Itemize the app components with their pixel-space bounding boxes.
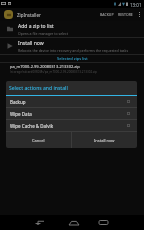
staticText: Cancel [32,138,45,143]
button[interactable]: Wipe Data [6,108,137,119]
staticText: Wipe Data [10,111,32,117]
button[interactable]: Back [26,215,52,230]
staticText: Install now [18,40,44,47]
button[interactable]: BACKUP [98,8,116,21]
button[interactable]: Cancel [6,132,71,148]
staticText: Add a zip to list [18,23,54,30]
staticText: BACKUP [100,12,114,17]
staticText: RESTORE [118,12,133,17]
staticText: ZipInstaller [17,12,41,18]
button[interactable]: Add a zip to list [0,21,144,37]
button[interactable]: Install now [72,132,137,148]
button[interactable]: RESTORE [116,8,135,21]
button[interactable]: Home [61,215,87,230]
staticText: Opens a file manager to select [18,31,68,36]
staticText: Reboots the device into recovery and per… [18,48,129,53]
button[interactable]: Wipe Cache & Dalvik [6,120,137,131]
button[interactable]: Recent apps [90,215,116,230]
staticText: Wipe Cache & Dalvik [10,123,54,129]
staticText: Install now [94,138,115,143]
staticText: Selected zips list [57,56,88,61]
button[interactable]: Install now [0,38,144,54]
staticText: Select actions and install [9,85,68,92]
staticText: 13:01 [130,2,142,8]
button[interactable]: pa_m7000-2.99-20080313-213302.zip [0,64,144,74]
staticText: pa_m7000-2.99-20080313-213302.zip [10,64,80,69]
staticText: Backup [10,99,26,105]
staticText: /storage/sdcard0/ROMs/pa_m7000-2.99-2008… [10,70,97,74]
button[interactable]: Backup [6,96,137,107]
button[interactable]: More options [135,8,143,21]
